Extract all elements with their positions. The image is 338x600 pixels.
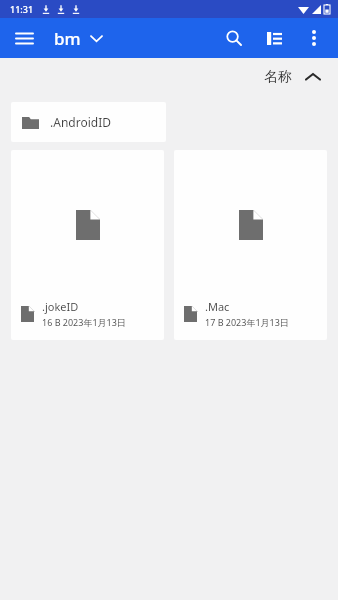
button[interactable]: Search [214, 18, 254, 58]
button[interactable]: .AndroidID [11, 102, 166, 142]
staticText: .AndroidID [50, 114, 111, 130]
staticText: 11:31 [10, 3, 34, 15]
staticText: .Mac [205, 299, 230, 314]
staticText: bm [54, 27, 81, 50]
button[interactable]: 名称 [258, 64, 326, 90]
staticText: 17 B 2023年1月13日 [205, 316, 289, 328]
button[interactable]: .Mac [174, 150, 327, 340]
button[interactable]: Open navigation menu [4, 18, 44, 58]
button[interactable]: .jokeID [11, 150, 164, 340]
button[interactable]: bm [50, 23, 106, 54]
button[interactable]: More options [294, 18, 334, 58]
staticText: 名称 [264, 68, 292, 86]
staticText: 16 B 2023年1月13日 [42, 316, 126, 328]
staticText: .jokeID [42, 299, 79, 314]
button[interactable]: Switch view [254, 18, 294, 58]
